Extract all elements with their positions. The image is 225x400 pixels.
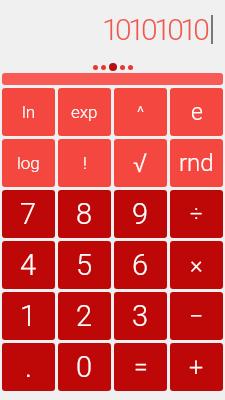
button[interactable] bbox=[2, 73, 223, 85]
staticText: + bbox=[189, 353, 204, 382]
staticText: = bbox=[134, 353, 148, 382]
staticText: √ bbox=[133, 148, 148, 178]
staticText: e bbox=[191, 99, 203, 126]
button[interactable]: + bbox=[170, 343, 223, 391]
staticText: 9 bbox=[132, 197, 149, 231]
button[interactable]: = bbox=[114, 343, 167, 391]
button[interactable]: 0 bbox=[58, 343, 111, 391]
staticText: 5 bbox=[76, 248, 93, 282]
staticText: . bbox=[25, 350, 32, 384]
staticText: 2 bbox=[76, 299, 93, 333]
button[interactable]: 6 bbox=[114, 241, 167, 289]
staticText: 10101010 bbox=[102, 12, 207, 47]
staticText: ln bbox=[22, 102, 36, 122]
button[interactable]: 7 bbox=[2, 190, 55, 238]
staticText: log bbox=[17, 153, 40, 173]
button[interactable]: 5 bbox=[58, 241, 111, 289]
button[interactable]: × bbox=[170, 241, 223, 289]
staticText: − bbox=[189, 302, 204, 331]
button[interactable]: rnd bbox=[170, 139, 223, 187]
staticText: 4 bbox=[20, 248, 37, 282]
button[interactable]: ^ bbox=[114, 88, 167, 136]
button[interactable]: ln bbox=[2, 88, 55, 136]
staticText: 0 bbox=[76, 350, 93, 384]
staticText: 8 bbox=[76, 197, 93, 231]
button[interactable]: 9 bbox=[114, 190, 167, 238]
staticText: × bbox=[190, 251, 203, 279]
button[interactable]: ÷ bbox=[170, 190, 223, 238]
staticText: rnd bbox=[179, 149, 214, 177]
button[interactable]: e bbox=[170, 88, 223, 136]
staticText: 7 bbox=[20, 197, 37, 231]
staticText: ÷ bbox=[190, 201, 203, 227]
staticText: exp bbox=[71, 102, 98, 122]
button[interactable]: 4 bbox=[2, 241, 55, 289]
button[interactable]: − bbox=[170, 292, 223, 340]
staticText: 1 bbox=[20, 299, 37, 333]
button[interactable]: exp bbox=[58, 88, 111, 136]
button[interactable]: ! bbox=[58, 139, 111, 187]
staticText: 3 bbox=[132, 299, 149, 333]
staticText: ^ bbox=[137, 102, 145, 122]
staticText: ! bbox=[83, 153, 87, 173]
button[interactable]: 1 bbox=[2, 292, 55, 340]
button[interactable]: . bbox=[2, 343, 55, 391]
button[interactable]: 3 bbox=[114, 292, 167, 340]
button[interactable]: 2 bbox=[58, 292, 111, 340]
button[interactable]: 8 bbox=[58, 190, 111, 238]
staticText: 6 bbox=[132, 248, 149, 282]
button[interactable]: log bbox=[2, 139, 55, 187]
button[interactable]: √ bbox=[114, 139, 167, 187]
